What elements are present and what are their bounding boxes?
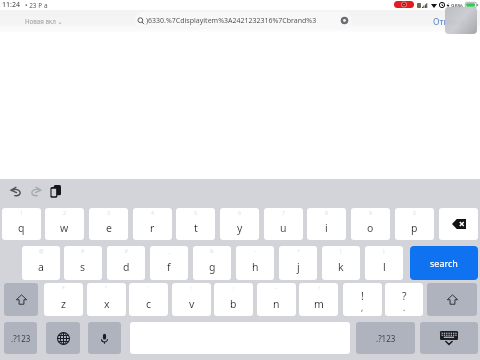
staticText: 6 [238, 210, 241, 217]
staticText: k [338, 260, 344, 274]
button[interactable]: " [87, 283, 126, 316]
staticText: 5 [194, 210, 197, 217]
staticText: .?123 [11, 333, 31, 344]
staticText: x [104, 297, 110, 311]
staticText: 1 [20, 210, 23, 217]
button[interactable]: )6330.%7Cdisplayitem%3A2421232316%7Cbran… [135, 12, 352, 29]
button[interactable]: Paste [50, 185, 61, 198]
staticText: ? [402, 289, 407, 303]
staticText: c [146, 297, 152, 311]
button[interactable]: 8 [307, 208, 346, 240]
button[interactable]: ! [343, 283, 382, 316]
staticText: 3 [107, 210, 110, 217]
staticText: Отмена [433, 16, 465, 28]
staticText: & [210, 248, 214, 255]
staticText: 7 [282, 210, 285, 217]
button[interactable]: 2 [45, 208, 84, 240]
button[interactable]: ' [129, 283, 168, 316]
button[interactable]: Symbols [356, 322, 415, 354]
button[interactable]: 5 [176, 208, 215, 240]
staticText: )6330.%7Cdisplayitem%3A2421232316%7Cbran… [146, 16, 317, 26]
button[interactable]: ( [322, 246, 360, 280]
button[interactable]: / [299, 283, 338, 316]
button[interactable]: ) [365, 246, 403, 280]
staticText: + [297, 248, 300, 255]
staticText: , [361, 302, 364, 314]
staticText: 4 [151, 210, 154, 217]
button[interactable]: Отмена [433, 15, 465, 29]
staticText: . [403, 302, 406, 314]
button[interactable]: ; [214, 283, 253, 316]
staticText: g [209, 260, 216, 274]
button[interactable]: Backspace [439, 208, 478, 240]
staticText: • 23 Р а [25, 1, 48, 10]
staticText: y [237, 221, 243, 235]
button[interactable]: * [44, 283, 83, 316]
button[interactable]: search [410, 246, 478, 280]
button[interactable]: 1 [2, 208, 41, 240]
staticText: : [191, 285, 193, 292]
button[interactable]: 7 [264, 208, 303, 240]
staticText: w [60, 221, 69, 235]
staticText: a [38, 260, 44, 274]
button[interactable]: @ [22, 246, 60, 280]
staticText: o [367, 221, 374, 235]
button[interactable]: + [279, 246, 317, 280]
staticText: @ [39, 248, 44, 255]
staticText: 11:24 [2, 0, 20, 10]
staticText: 2 [63, 210, 66, 217]
staticText: r [150, 221, 155, 235]
staticText: ( [340, 248, 342, 255]
button[interactable]: 0 [395, 208, 434, 240]
staticText: q [18, 221, 25, 235]
staticText: b [230, 297, 237, 311]
staticText: Новая вкл ⌄ [25, 17, 63, 25]
staticText: ! [361, 289, 364, 303]
staticText: ~ [275, 285, 278, 292]
staticText: ' [148, 285, 150, 292]
staticText: search [430, 257, 458, 269]
staticText: # [81, 248, 85, 255]
button[interactable]: # [64, 246, 102, 280]
staticText: i [325, 221, 328, 235]
button[interactable]: Undo [9, 185, 24, 198]
staticText: p [411, 221, 418, 235]
staticText: v [189, 297, 195, 311]
staticText: f [167, 260, 171, 274]
button[interactable]: 6 [220, 208, 259, 240]
staticText: 8 [325, 210, 328, 217]
staticText: ₽ [125, 248, 128, 255]
staticText: ) [383, 248, 385, 255]
button[interactable]: Hide keyboard [420, 322, 478, 354]
button[interactable]: & [193, 246, 231, 280]
staticText: l [383, 260, 386, 274]
staticText: m [314, 297, 324, 311]
staticText: " [105, 285, 108, 292]
button[interactable]: Shift [427, 283, 477, 316]
button[interactable]: Change language [46, 322, 80, 354]
staticText: / [318, 285, 320, 292]
button[interactable]: 3 [89, 208, 128, 240]
staticText: 98% [451, 2, 463, 10]
staticText: z [61, 297, 66, 311]
button[interactable]: 9 [351, 208, 390, 240]
button[interactable]: 4 [133, 208, 172, 240]
button[interactable]: Symbols [4, 322, 37, 354]
button[interactable]: Voice input [88, 322, 121, 354]
button[interactable]: - [236, 246, 274, 280]
staticText: e [106, 221, 112, 235]
staticText: - [254, 248, 256, 255]
button[interactable]: _ [150, 246, 188, 280]
button[interactable]: ? [385, 283, 423, 316]
button[interactable]: : [172, 283, 211, 316]
staticText: .?123 [376, 333, 396, 344]
staticText: u [280, 221, 287, 235]
button[interactable]: ₽ [107, 246, 145, 280]
button[interactable]: Shift [4, 283, 38, 316]
button[interactable]: ~ [257, 283, 296, 316]
staticText: 9 [369, 210, 372, 217]
staticText: t [194, 221, 198, 235]
button[interactable]: Redo [28, 185, 43, 198]
staticText: _ [168, 248, 171, 255]
